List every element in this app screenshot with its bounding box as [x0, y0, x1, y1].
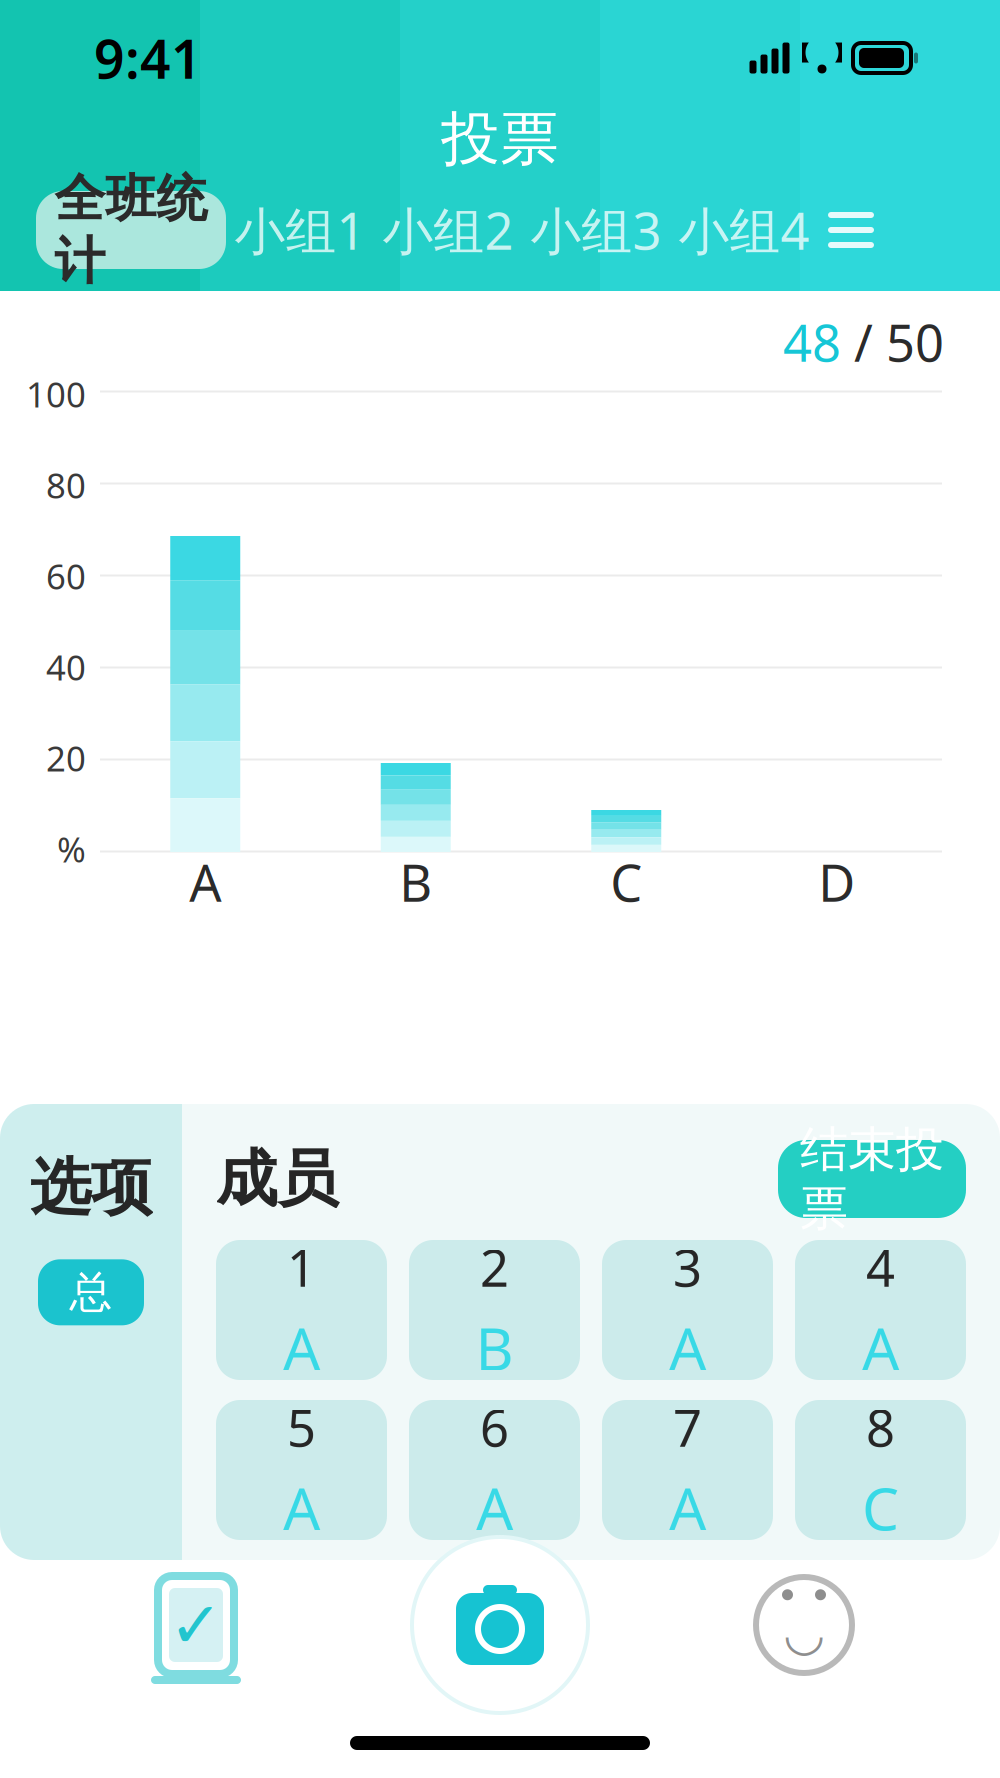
- staticText: 8: [866, 1393, 895, 1461]
- staticText: A: [189, 848, 221, 916]
- staticText: 小组1: [234, 196, 365, 264]
- staticText: D: [818, 848, 855, 916]
- staticText: 7: [673, 1393, 702, 1461]
- staticText: 9:41: [94, 23, 202, 93]
- button[interactable]: 5: [216, 1400, 387, 1540]
- staticText: 100: [26, 371, 86, 417]
- button[interactable]: 2: [409, 1240, 580, 1380]
- button[interactable]: 总: [38, 1259, 144, 1325]
- staticText: 全班统计: [54, 168, 207, 292]
- button[interactable]: 4: [795, 1240, 966, 1380]
- staticText: %: [57, 826, 86, 872]
- button[interactable]: 小组2: [374, 191, 522, 269]
- staticText: 3: [673, 1233, 702, 1301]
- staticText: A: [283, 1469, 320, 1547]
- staticText: 4: [866, 1233, 895, 1301]
- staticText: 小组4: [678, 196, 809, 264]
- staticText: 1: [287, 1233, 316, 1301]
- staticText: A: [669, 1309, 706, 1387]
- staticText: 80: [46, 462, 86, 508]
- button[interactable]: 1: [216, 1240, 387, 1380]
- staticText: B: [475, 1309, 513, 1387]
- staticText: ✓: [169, 1589, 223, 1661]
- staticText: 48: [783, 308, 841, 376]
- button[interactable]: 结束投票: [778, 1140, 966, 1218]
- staticText: 结束投票: [800, 1120, 944, 1238]
- button[interactable]: 小组4: [670, 191, 818, 269]
- staticText: 2: [480, 1233, 509, 1301]
- staticText: C: [862, 1469, 899, 1547]
- staticText: 小组2: [382, 196, 513, 264]
- staticText: 投票: [441, 103, 559, 175]
- staticText: A: [476, 1469, 513, 1547]
- staticText: 总: [69, 1266, 112, 1318]
- button[interactable]: 7: [602, 1400, 773, 1540]
- button[interactable]: 小组3: [522, 191, 670, 269]
- staticText: 6: [480, 1393, 509, 1461]
- button[interactable]: 表情: [694, 1560, 914, 1690]
- staticText: 5: [287, 1393, 316, 1461]
- staticText: A: [862, 1309, 899, 1387]
- staticText: 小组3: [530, 196, 661, 264]
- button[interactable]: 3: [602, 1240, 773, 1380]
- staticText: C: [610, 848, 642, 916]
- staticText: B: [399, 848, 432, 916]
- staticText: 40: [46, 644, 86, 690]
- button[interactable]: 菜单: [818, 191, 884, 269]
- staticText: 选项: [30, 1150, 152, 1225]
- staticText: 成员: [216, 1141, 338, 1217]
- button[interactable]: 全班统计: [36, 191, 226, 269]
- staticText: A: [283, 1309, 320, 1387]
- button[interactable]: 投票: [86, 1560, 306, 1690]
- staticText: A: [669, 1469, 706, 1547]
- staticText: / 50: [841, 308, 944, 376]
- button[interactable]: 拍照: [405, 1560, 595, 1690]
- button[interactable]: 小组1: [226, 191, 374, 269]
- staticText: 60: [46, 553, 86, 599]
- staticText: ◡: [783, 1606, 825, 1661]
- button[interactable]: 6: [409, 1400, 580, 1540]
- staticText: 20: [46, 735, 86, 781]
- button[interactable]: 8: [795, 1400, 966, 1540]
